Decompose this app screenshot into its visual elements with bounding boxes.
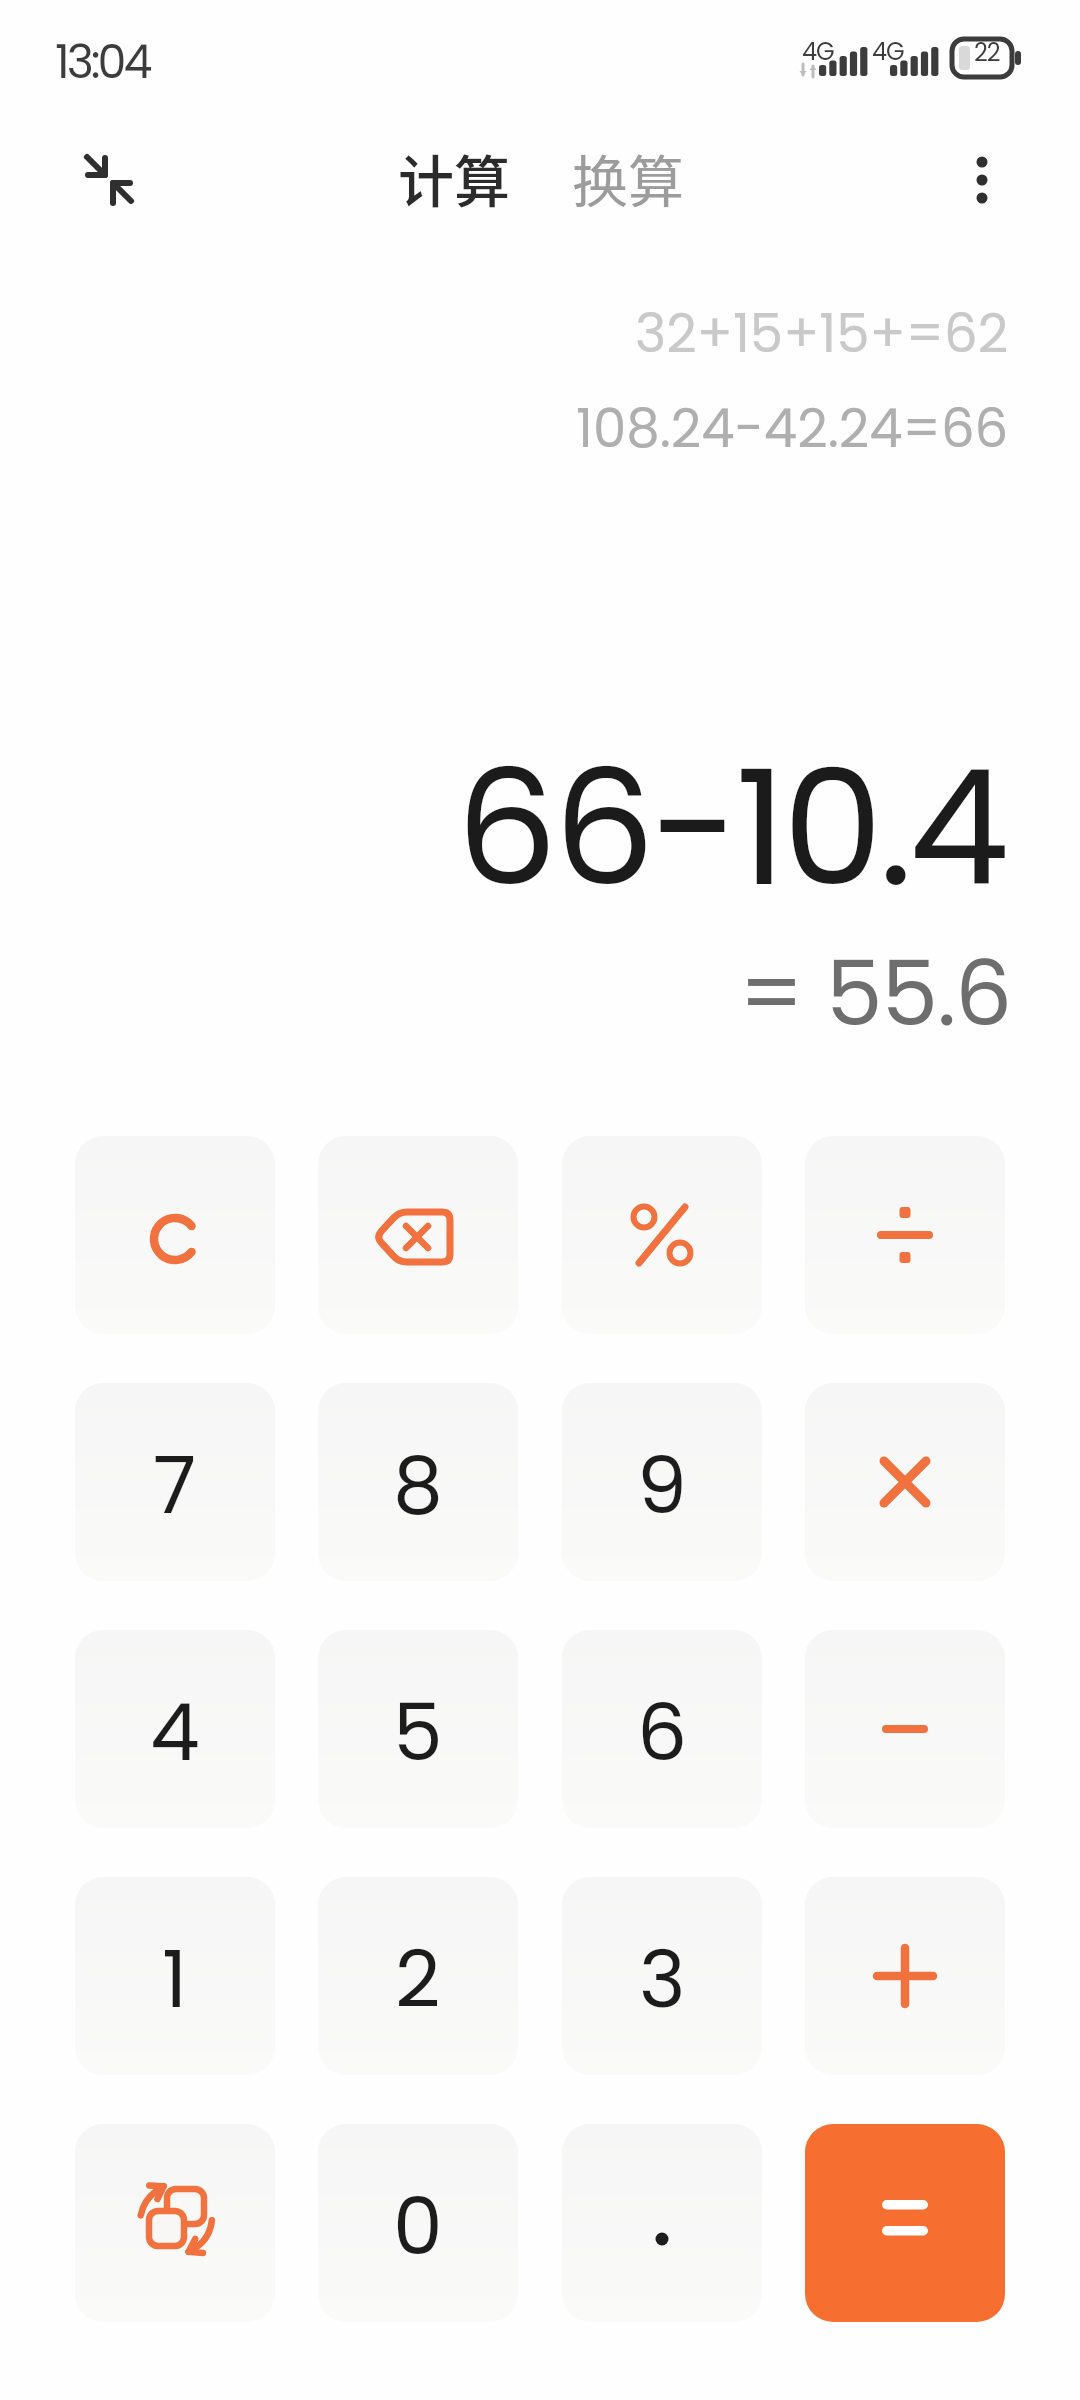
staticText: 22 [974, 36, 1000, 70]
button[interactable]: 0 [318, 2124, 518, 2322]
button[interactable]: 4 [75, 1630, 275, 1828]
button[interactable] [75, 1136, 275, 1334]
staticText: 9 [637, 1430, 687, 1541]
button[interactable]: 7 [75, 1383, 275, 1581]
button[interactable]: 3 [562, 1877, 762, 2075]
button[interactable] [562, 130, 692, 230]
staticText: 4G [802, 35, 834, 69]
button[interactable] [562, 1136, 762, 1334]
button[interactable]: 2 [318, 1877, 518, 2075]
button[interactable]: 5 [318, 1630, 518, 1828]
button[interactable] [805, 2124, 1005, 2322]
staticText: 4G [872, 35, 904, 69]
staticText: 1 [162, 1924, 188, 2035]
button[interactable] [390, 130, 520, 230]
button[interactable] [74, 144, 146, 216]
staticText: 3 [639, 1924, 686, 2035]
staticText: = 55.6 [739, 931, 1012, 1057]
staticText: 8 [393, 1430, 443, 1541]
button[interactable] [805, 1877, 1005, 2075]
button[interactable]: 1 [75, 1877, 275, 2075]
staticText: 108.24-42.24=66 [576, 391, 1009, 465]
button[interactable] [318, 1136, 518, 1334]
button[interactable]: 6 [562, 1630, 762, 1828]
button[interactable] [75, 2124, 275, 2322]
staticText: 2 [395, 1924, 441, 2035]
staticText: 66-10.4 [456, 716, 1006, 940]
staticText: 计算 [398, 137, 510, 218]
staticText: 6 [637, 1677, 688, 1788]
button[interactable] [805, 1630, 1005, 1828]
staticText: 0 [393, 2171, 443, 2282]
button[interactable]: 8 [318, 1383, 518, 1581]
staticText: 32+15+15+=62 [635, 296, 1009, 370]
button[interactable] [805, 1136, 1005, 1334]
staticText: 13:04 [55, 30, 150, 94]
staticText: 5 [393, 1677, 443, 1788]
button[interactable] [562, 2124, 762, 2322]
button[interactable]: 9 [562, 1383, 762, 1581]
staticText: 7 [153, 1430, 197, 1541]
staticText: 4 [150, 1677, 200, 1788]
button[interactable] [955, 144, 1009, 216]
button[interactable] [805, 1383, 1005, 1581]
staticText: 换算 [572, 137, 684, 218]
